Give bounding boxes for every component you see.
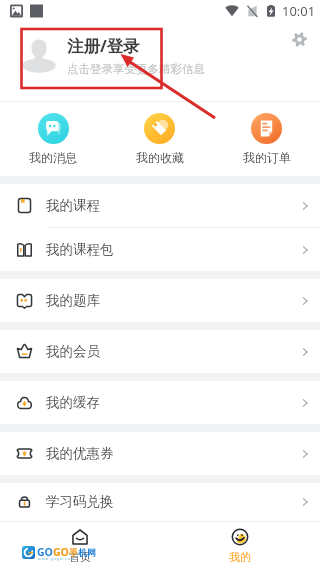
button[interactable]: 学习码兑换 (0, 483, 320, 520)
staticText: 10:01 (282, 2, 316, 20)
staticText: 机网 (78, 547, 96, 558)
staticText: 点击登录享受更多精彩信息 (67, 62, 205, 76)
staticText: 我的缓存 (46, 394, 100, 411)
staticText: 我的优惠券 (46, 445, 114, 462)
staticText: 我的收藏 (136, 150, 184, 165)
button[interactable]: 我的消息 (0, 102, 106, 176)
staticText: 我的会员 (46, 343, 100, 360)
staticText: 注册/登录 (67, 34, 140, 57)
staticText: 我的课程 (46, 197, 100, 214)
staticText: 我的课程包 (46, 241, 114, 258)
staticText: 学习码兑换 (46, 493, 114, 510)
staticText: 我的题库 (46, 292, 100, 309)
staticText: w w w . g o g o . c o m (38, 556, 74, 561)
button[interactable]: Settings (290, 30, 308, 48)
button[interactable]: 我的订单 (213, 102, 320, 176)
staticText: 我的 (229, 550, 251, 564)
button[interactable]: 首页 (0, 522, 160, 568)
button[interactable]: 我的课程包 (0, 228, 320, 271)
button[interactable]: 我的课程 (0, 184, 320, 227)
button[interactable]: 我的 (160, 522, 320, 568)
staticText: GO (37, 545, 53, 559)
staticText: 首页 (69, 550, 91, 564)
staticText: GO (53, 545, 69, 559)
staticText: 我的消息 (29, 150, 77, 165)
button[interactable]: 我的题库 (0, 279, 320, 322)
button[interactable]: 我的收藏 (106, 102, 213, 176)
staticText: 手 (69, 547, 78, 558)
button[interactable]: 我的缓存 (0, 381, 320, 424)
button[interactable]: 我的优惠券 (0, 432, 320, 475)
staticText: 我的订单 (243, 150, 291, 165)
button[interactable]: 注册/登录 (0, 24, 320, 102)
button[interactable]: 我的会员 (0, 330, 320, 373)
